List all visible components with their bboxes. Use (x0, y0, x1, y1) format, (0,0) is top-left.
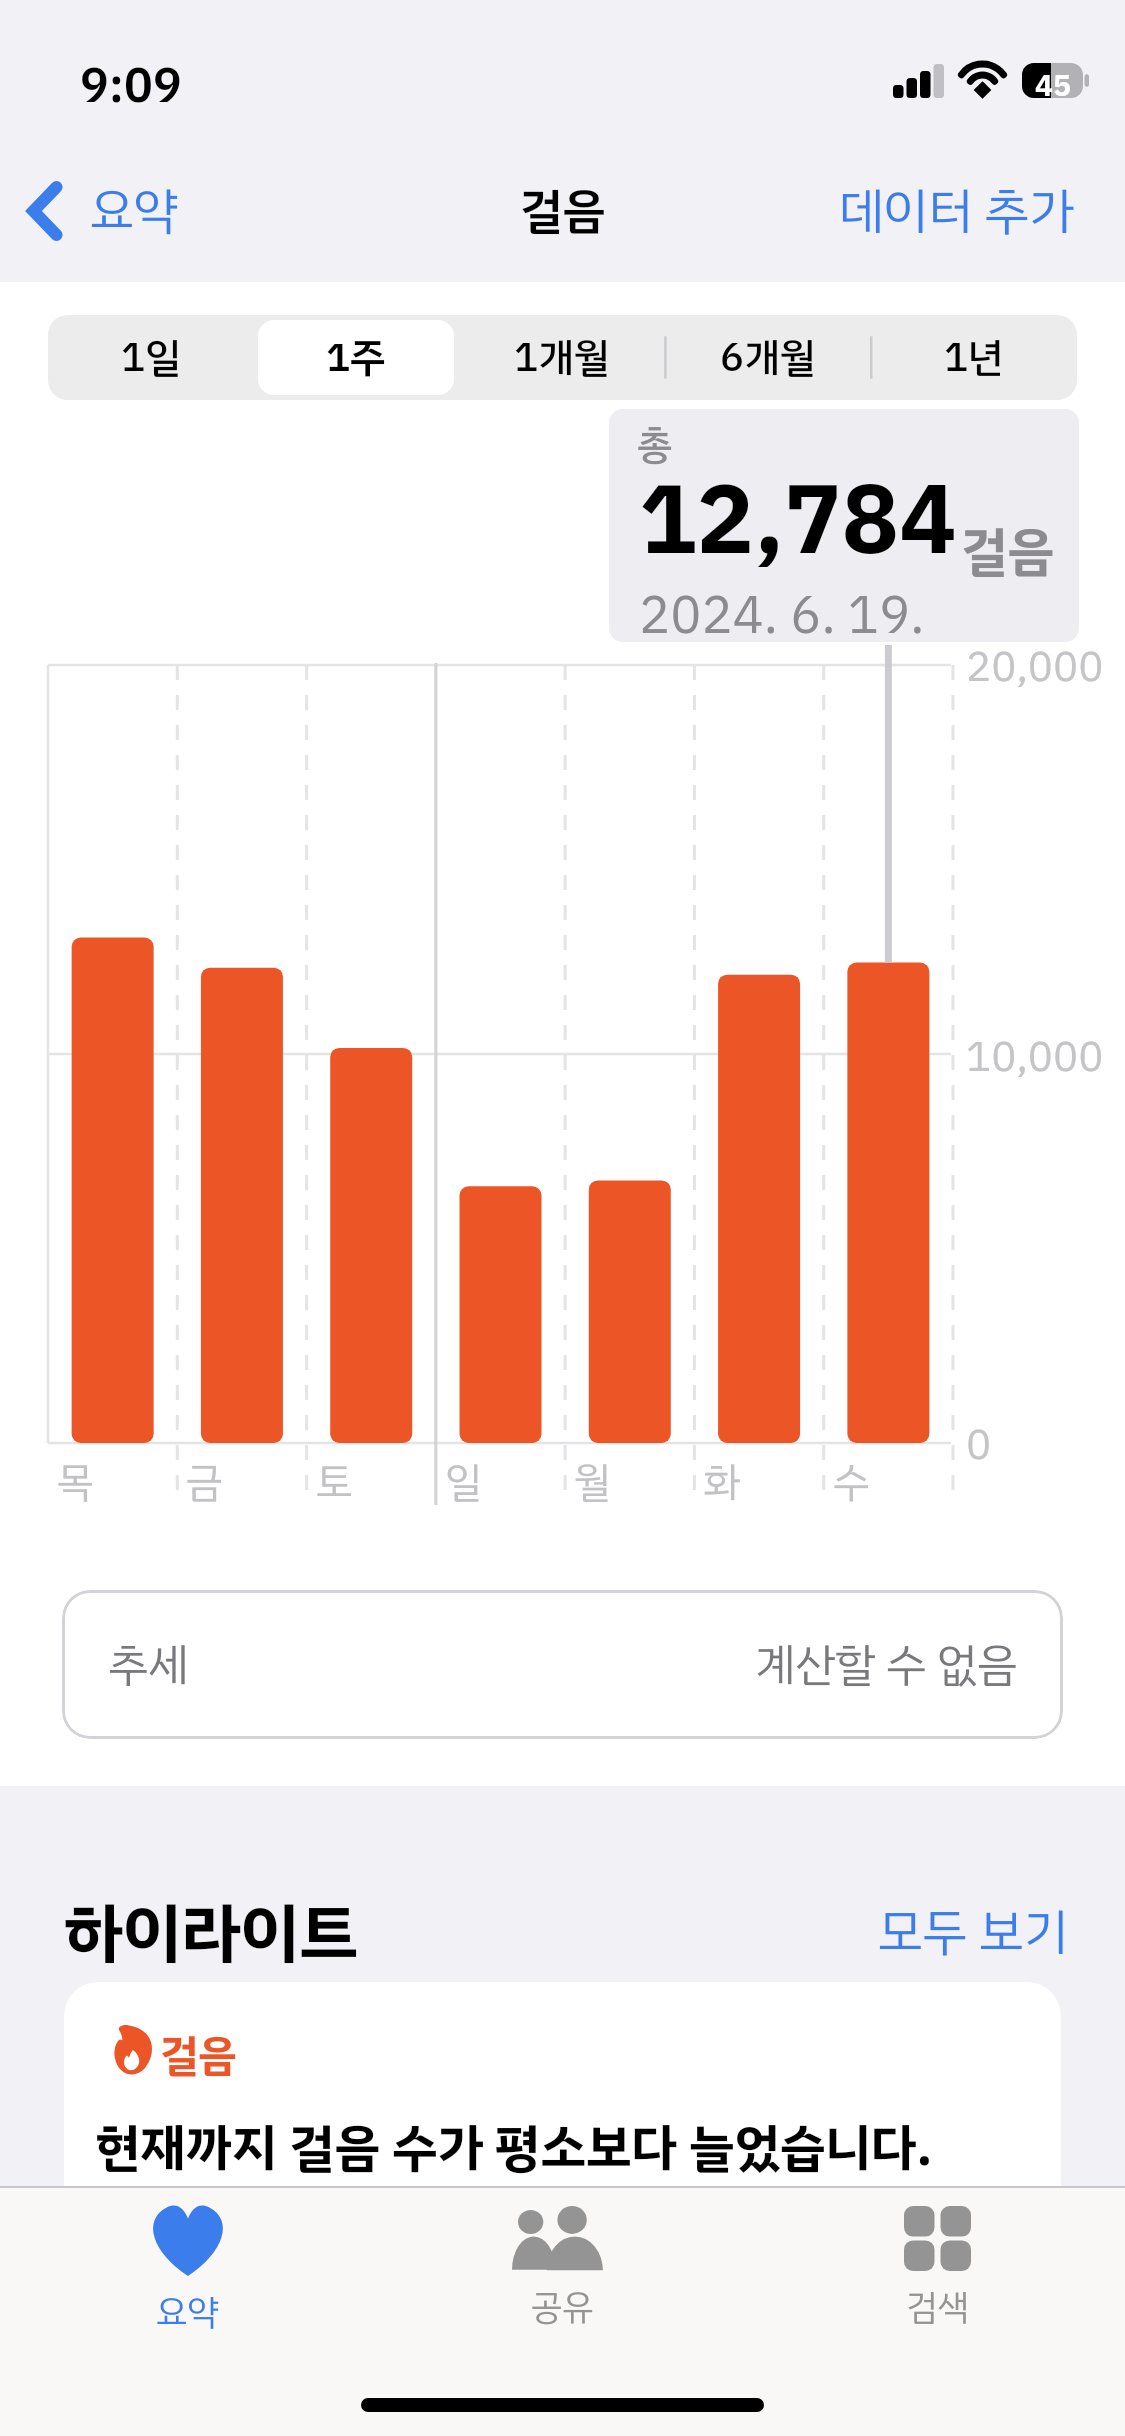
staticText: 걸음 (160, 2023, 237, 2088)
staticText: 하이라이트 (64, 1884, 359, 1983)
staticText: 현재까지 걸음 수가 평소보다 늘었습니다. (95, 2110, 933, 2187)
button[interactable]: 걸음 (64, 1982, 1061, 2302)
staticText: 토 (316, 1452, 353, 1514)
staticText: 10,000 (966, 1025, 1104, 1088)
staticText: 일 (445, 1452, 482, 1514)
staticText: 1개월 (514, 328, 610, 388)
staticText: 검색 (906, 2281, 969, 2334)
staticText: 추세 (108, 1631, 189, 1699)
other: 요약 (147, 2206, 229, 2276)
staticText: 12,784 (639, 449, 957, 593)
staticText: 0 (966, 1413, 992, 1476)
button[interactable]: 데이터 추가 (839, 174, 1074, 249)
staticText: 요약 (156, 2286, 219, 2339)
other: 공유 (512, 2206, 613, 2271)
staticText: 20,000 (966, 635, 1104, 698)
staticText: 금 (186, 1452, 223, 1514)
staticText: 1년 (944, 328, 1004, 388)
staticText: 월 (574, 1452, 611, 1514)
staticText: 수 (833, 1452, 870, 1514)
button[interactable]: 6개월 (670, 320, 866, 395)
staticText: 1주 (326, 328, 386, 388)
other: 검색 (904, 2206, 971, 2271)
staticText: 요약 (90, 174, 178, 248)
staticText: 걸음 (961, 513, 1054, 591)
staticText: 45 (1035, 63, 1071, 98)
staticText: 6개월 (720, 328, 816, 388)
button[interactable]: 뒤로 (28, 174, 178, 248)
staticText: 9:09 (80, 50, 182, 122)
staticText: 계산할 수 없음 (755, 1631, 1018, 1699)
staticText: 1일 (121, 328, 181, 388)
staticText: 걸음 (520, 175, 606, 247)
button[interactable]: 검색 (750, 2186, 1125, 2366)
button[interactable]: 1개월 (464, 320, 660, 395)
button[interactable]: 1년 (876, 320, 1072, 395)
staticText: 화 (704, 1452, 741, 1514)
staticText: 총 (637, 415, 673, 475)
staticText: 공유 (531, 2281, 594, 2334)
button[interactable]: 모두 보기 (878, 1895, 1069, 1970)
staticText: 2024. 6. 19. (639, 577, 925, 642)
staticText: 모두 보기 (878, 1895, 1069, 1970)
staticText: 목 (57, 1452, 94, 1514)
button[interactable]: 요약 (0, 2186, 375, 2366)
button[interactable]: 1일 (53, 320, 248, 395)
button[interactable]: 추세 (62, 1590, 1063, 1739)
other: 뒤로 (28, 180, 62, 242)
button[interactable]: 공유 (375, 2186, 750, 2366)
button[interactable]: 1주 (258, 320, 454, 395)
